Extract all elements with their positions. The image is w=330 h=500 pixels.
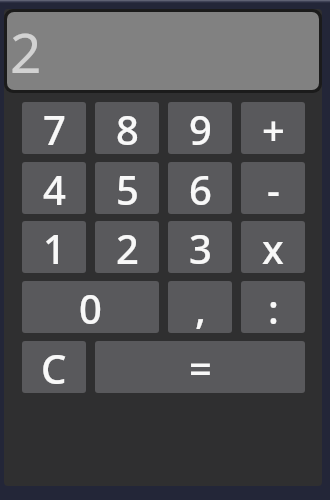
staticText: 2 [10,14,42,89]
staticText: C [41,341,67,393]
button[interactable]: 7 [22,102,86,154]
button[interactable]: C [22,341,86,393]
staticText: + [262,102,285,154]
button[interactable]: 4 [22,162,86,214]
button[interactable]: 2 [95,221,159,273]
staticText: 9 [189,102,212,154]
button[interactable]: = [95,341,305,393]
staticText: 3 [189,221,212,273]
staticText: x [262,221,284,273]
button[interactable]: 0 [22,281,159,333]
button[interactable]: 5 [95,162,159,214]
button[interactable]: + [241,102,305,154]
button[interactable]: x [241,221,305,273]
button[interactable]: : [241,281,305,333]
staticText: 7 [43,102,66,154]
button[interactable]: 1 [22,221,86,273]
button[interactable]: 6 [168,162,232,214]
staticText: , [195,281,206,333]
button[interactable]: , [168,281,232,333]
staticText: 4 [43,162,66,214]
staticText: 6 [189,162,212,214]
staticText: 8 [116,102,139,154]
staticText: 2 [116,221,139,273]
button[interactable]: 2 [7,12,319,90]
button[interactable]: 3 [168,221,232,273]
staticText: 0 [79,281,102,333]
button[interactable]: 8 [95,102,159,154]
button[interactable]: 9 [168,102,232,154]
staticText: - [267,162,280,214]
staticText: 5 [116,162,139,214]
staticText: = [189,341,212,393]
button[interactable]: - [241,162,305,214]
staticText: 1 [43,221,66,273]
staticText: : [268,281,279,333]
